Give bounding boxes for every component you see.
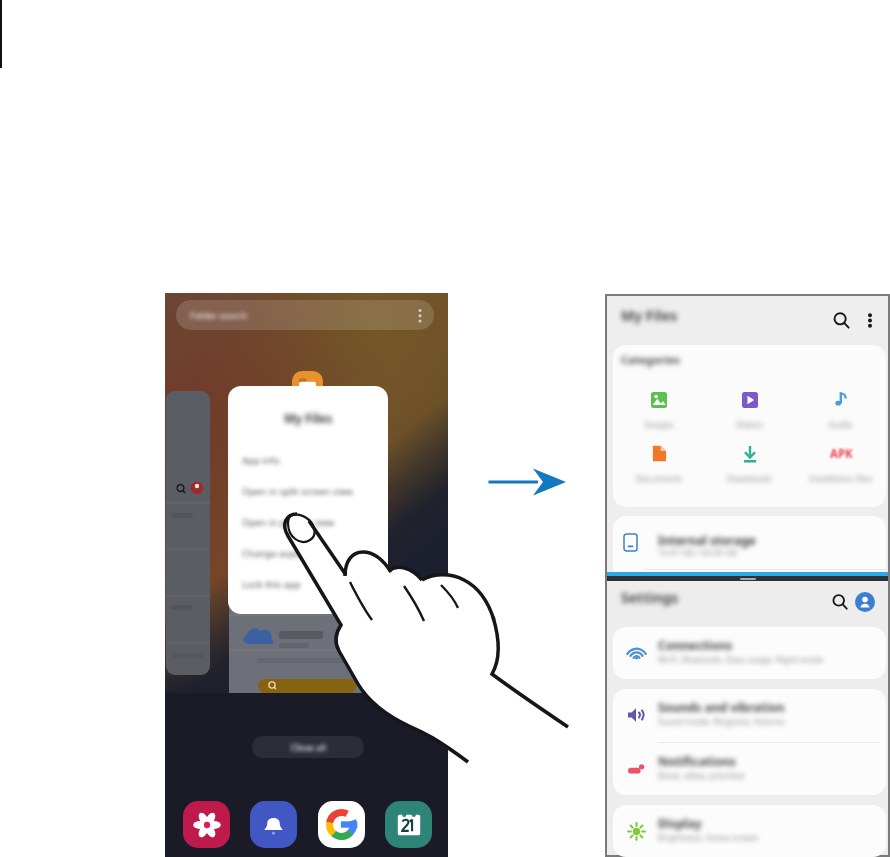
staticText: Categories — [621, 352, 681, 367]
staticText: Videos — [736, 419, 763, 431]
button[interactable]: Connections — [613, 627, 886, 679]
staticText: Sound mode, Ringtone, Volume — [658, 716, 785, 728]
staticText: Documents — [636, 473, 682, 485]
staticText: Open in split screen view — [242, 485, 353, 498]
staticText: My Files — [621, 306, 678, 325]
button[interactable]: Sounds and vibration — [613, 689, 886, 741]
button[interactable]: Downloads — [704, 444, 795, 496]
button[interactable]: More options — [858, 308, 882, 332]
button[interactable]: Calendar — [385, 801, 432, 848]
button[interactable]: Internal storage — [613, 516, 886, 572]
staticText: Folder search — [190, 309, 247, 321]
button[interactable]: Close all — [252, 736, 364, 758]
button[interactable]: App info — [228, 445, 388, 476]
button[interactable]: Notifications — [613, 743, 886, 795]
button[interactable]: Change aspect ratio — [228, 538, 388, 569]
staticText: My Files — [284, 410, 333, 426]
button[interactable]: Open in split screen view — [228, 476, 388, 507]
staticText: Sounds and vibration — [658, 699, 785, 715]
staticText: Display — [658, 815, 702, 831]
button[interactable]: Notifications — [250, 801, 297, 848]
staticText: Lock this app — [242, 578, 301, 591]
button[interactable]: Search settings — [826, 588, 854, 616]
staticText: Notifications — [658, 753, 736, 769]
staticText: Brightness, Home screen — [658, 832, 759, 844]
staticText: Images — [644, 419, 674, 431]
staticText: Internal storage — [658, 532, 756, 548]
staticText: APK — [830, 446, 853, 462]
button[interactable]: Videos — [704, 390, 795, 442]
staticText: Change aspect ratio — [242, 547, 331, 560]
staticText: App info — [242, 454, 280, 467]
button[interactable]: Folder search — [176, 300, 434, 330]
button[interactable]: APK — [795, 444, 886, 496]
staticText: Installation files — [809, 473, 873, 485]
button[interactable]: Google — [318, 801, 365, 848]
staticText: Close all — [291, 741, 326, 753]
button[interactable]: Documents — [613, 444, 704, 496]
button[interactable]: Display — [613, 805, 886, 857]
staticText: Wi-Fi, Bluetooth, Data usage, Flight mod… — [658, 654, 824, 666]
staticText: Connections — [658, 637, 733, 653]
staticText: Open in pop-up view — [242, 516, 335, 529]
staticText: Audio — [829, 419, 853, 431]
button[interactable]: Audio — [795, 390, 886, 442]
button[interactable]: Lock this app — [228, 569, 388, 600]
staticText: Settings — [621, 588, 679, 607]
button[interactable]: Account — [855, 592, 875, 612]
button[interactable]: Open in pop-up view — [228, 507, 388, 538]
button[interactable]: Search — [827, 306, 855, 334]
staticText: 14.97 GB / 64.00 GB — [658, 547, 737, 559]
staticText: Block, allow, prioritise — [658, 770, 745, 782]
staticText: Downloads — [727, 473, 772, 485]
button[interactable]: Images — [613, 390, 704, 442]
button[interactable]: Gallery — [183, 801, 230, 848]
